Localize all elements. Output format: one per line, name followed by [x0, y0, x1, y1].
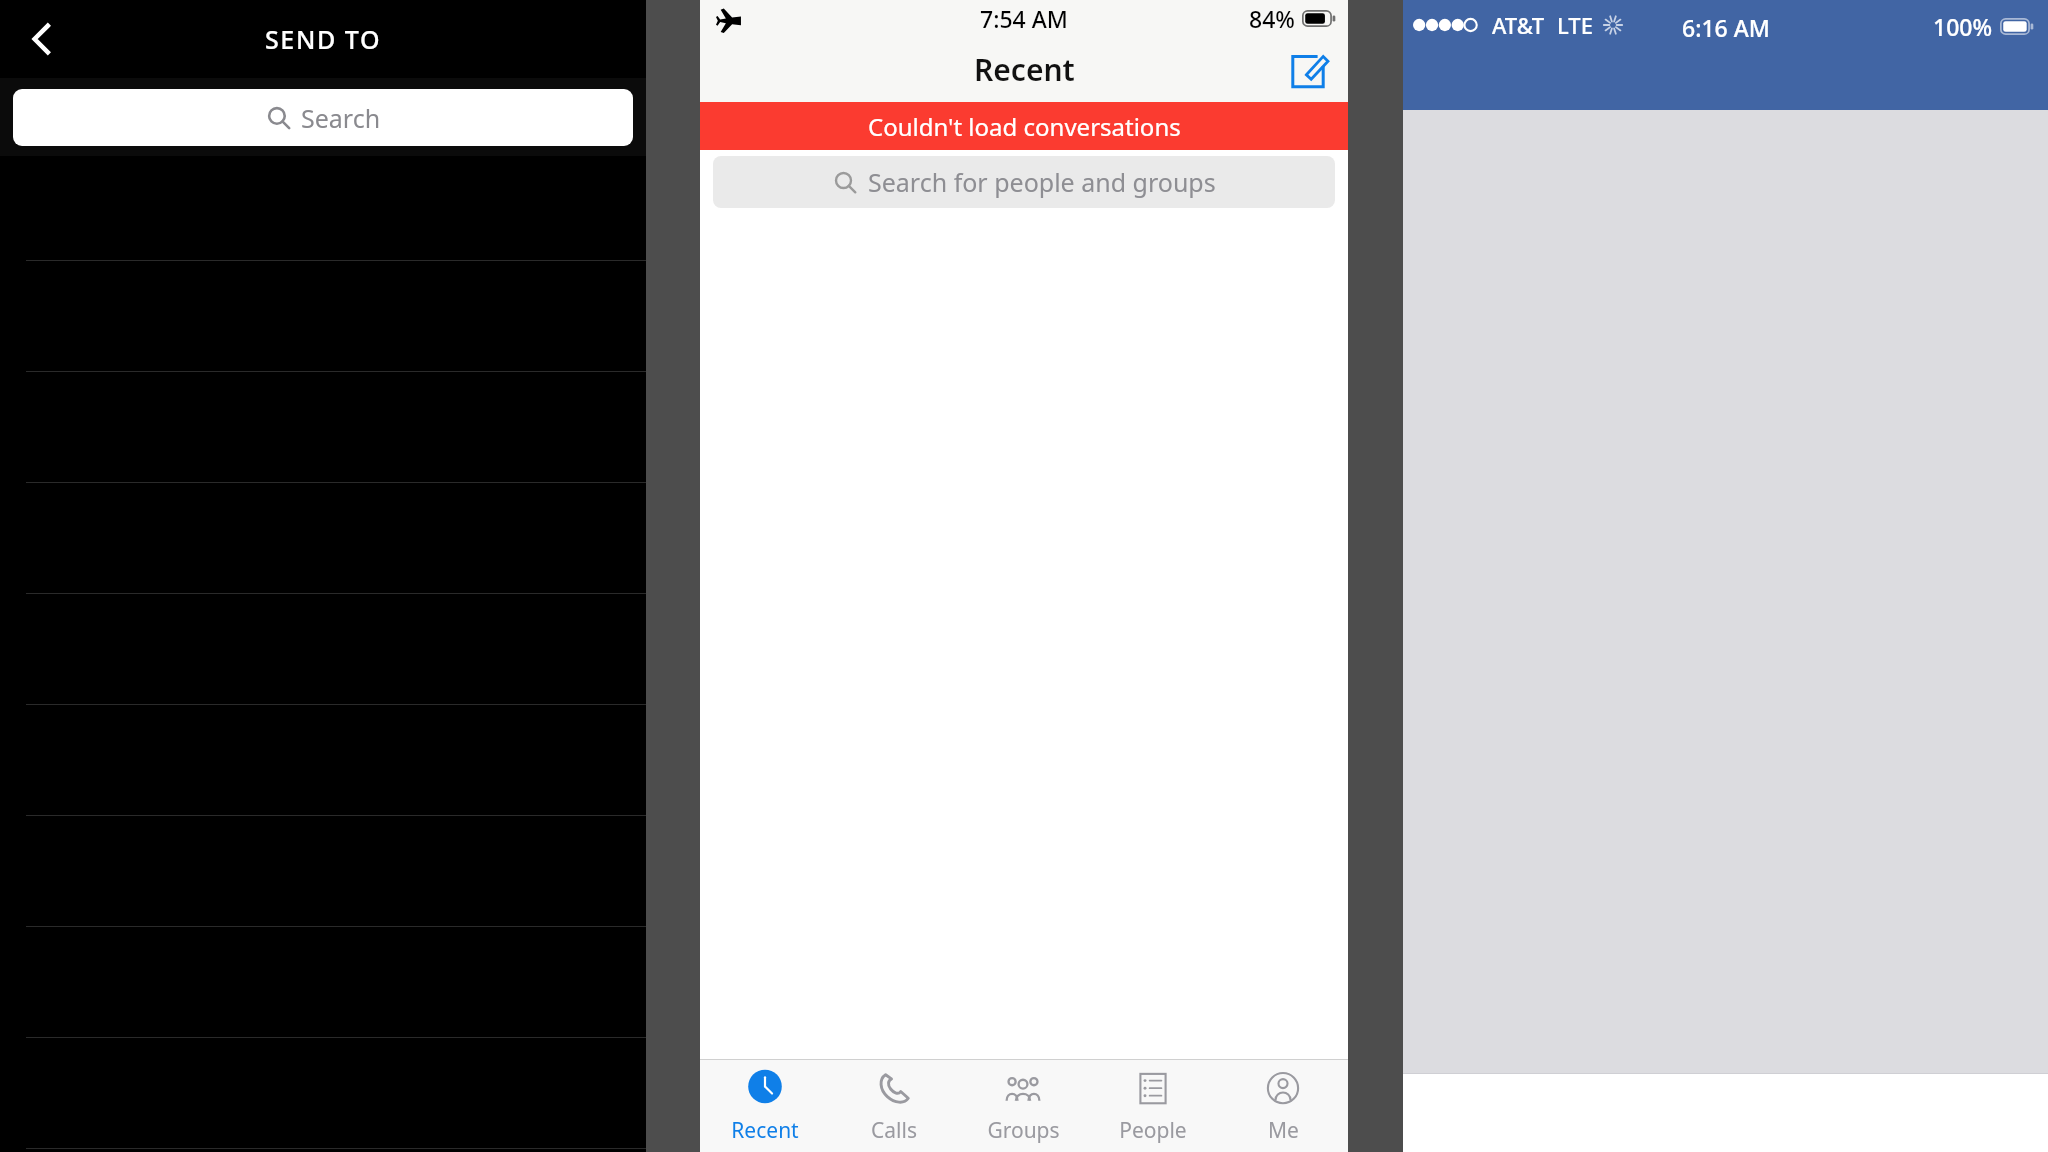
button[interactable]: People: [1088, 1060, 1218, 1152]
button[interactable]: [0, 815, 646, 926]
staticText: Recent: [974, 49, 1075, 90]
button[interactable]: [0, 371, 646, 482]
button[interactable]: Recent: [700, 1060, 829, 1152]
button[interactable]: [0, 482, 646, 593]
staticText: People: [1119, 1116, 1187, 1145]
staticText: 84%: [1249, 3, 1295, 34]
button[interactable]: Search: [13, 89, 633, 146]
button[interactable]: Me: [1218, 1060, 1348, 1152]
button[interactable]: Back: [10, 9, 70, 69]
staticText: 100%: [1933, 11, 1993, 42]
button[interactable]: [0, 593, 646, 704]
staticText: Me: [1268, 1116, 1299, 1145]
staticText: Couldn't load conversations: [868, 110, 1181, 143]
button[interactable]: Couldn't load conversations: [700, 102, 1348, 150]
staticText: Calls: [871, 1116, 917, 1145]
button[interactable]: New conversation: [1284, 46, 1332, 94]
button[interactable]: Groups: [958, 1060, 1088, 1152]
staticText: 6:16 AM: [1682, 12, 1770, 43]
button[interactable]: Calls: [829, 1060, 958, 1152]
button[interactable]: [0, 260, 646, 371]
staticText: AT&T: [1492, 10, 1545, 40]
staticText: Search: [301, 101, 381, 135]
button[interactable]: Search for people and groups: [713, 156, 1335, 208]
button[interactable]: [0, 926, 646, 1037]
staticText: 7:54 AM: [980, 3, 1068, 34]
staticText: LTE: [1557, 10, 1593, 40]
staticText: Groups: [987, 1116, 1060, 1145]
staticText: Recent: [731, 1116, 799, 1145]
button[interactable]: [0, 1037, 646, 1148]
staticText: Search for people and groups: [868, 165, 1216, 199]
button[interactable]: [0, 704, 646, 815]
button[interactable]: [0, 1148, 646, 1152]
staticText: SEND TO: [265, 22, 382, 56]
